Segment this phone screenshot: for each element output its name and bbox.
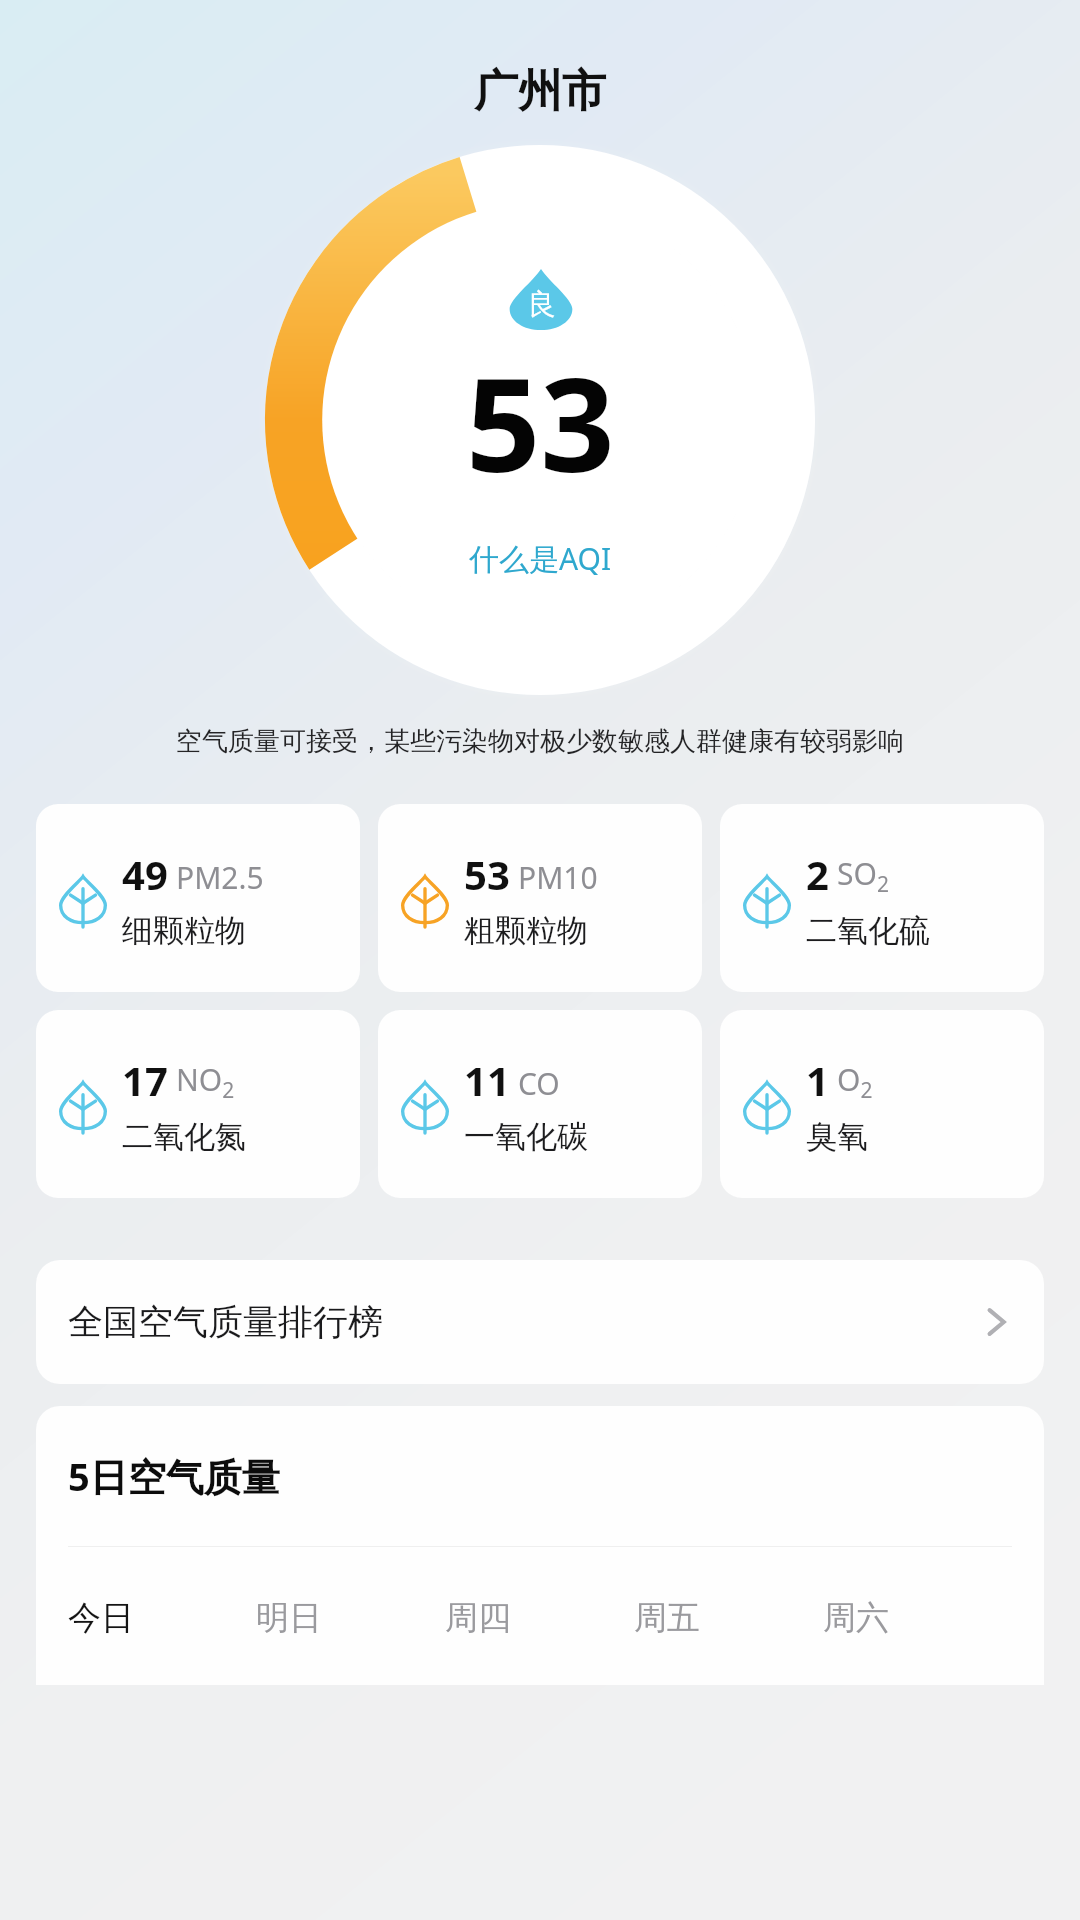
staticText: 17: [122, 1053, 168, 1107]
staticText: 周四: [445, 1597, 511, 1639]
staticText: 二氧化氮: [122, 1117, 246, 1156]
button[interactable]: 17: [36, 1010, 360, 1198]
staticText: NO2: [176, 1059, 235, 1104]
staticText: 全国空气质量排行榜: [68, 1300, 980, 1344]
staticText: 11: [464, 1053, 510, 1107]
button[interactable]: 49: [36, 804, 360, 992]
button[interactable]: 明日: [256, 1591, 445, 1645]
button[interactable]: 周六: [823, 1591, 1012, 1645]
button[interactable]: 今日: [68, 1591, 256, 1645]
staticText: 1: [806, 1053, 829, 1107]
staticText: CO: [518, 1063, 560, 1104]
button[interactable]: 周四: [445, 1591, 634, 1645]
button[interactable]: 周五: [634, 1591, 823, 1645]
staticText: 广州市: [0, 64, 1080, 119]
staticText: 53: [466, 333, 615, 510]
button[interactable]: 什么是AQI: [437, 524, 644, 593]
staticText: 53: [464, 847, 510, 901]
staticText: 一氧化碳: [464, 1117, 588, 1156]
staticText: SO2: [837, 853, 889, 898]
staticText: 5日空气质量: [68, 1450, 280, 1502]
staticText: PM10: [518, 857, 598, 898]
staticText: 空气质量可接受，某些污染物对极少数敏感人群健康有较弱影响: [14, 725, 1066, 758]
staticText: 细颗粒物: [122, 911, 246, 950]
button[interactable]: 11: [378, 1010, 702, 1198]
staticText: 49: [122, 847, 168, 901]
button[interactable]: 53: [378, 804, 702, 992]
button[interactable]: 1: [720, 1010, 1044, 1198]
staticText: 2: [806, 847, 829, 901]
staticText: 二氧化硫: [806, 911, 930, 950]
staticText: 明日: [256, 1597, 322, 1639]
button[interactable]: 2: [720, 804, 1044, 992]
staticText: 周六: [823, 1597, 889, 1639]
staticText: 周五: [634, 1597, 700, 1639]
staticText: 什么是AQI: [469, 538, 612, 579]
staticText: O2: [837, 1059, 873, 1104]
staticText: PM2.5: [176, 857, 264, 898]
staticText: 臭氧: [806, 1117, 868, 1156]
other: Open national air quality ranking: [980, 1306, 1012, 1338]
staticText: 良: [527, 286, 556, 323]
button[interactable]: 全国空气质量排行榜: [36, 1260, 1044, 1384]
staticText: 粗颗粒物: [464, 911, 588, 950]
staticText: 今日: [68, 1597, 134, 1639]
